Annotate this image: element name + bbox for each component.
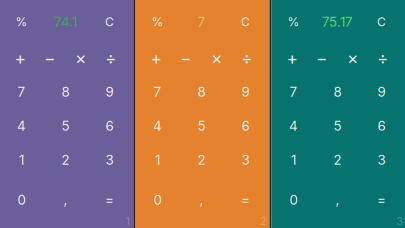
button[interactable]: C	[366, 9, 396, 35]
staticText: 0	[17, 192, 25, 208]
button[interactable]: 4	[142, 113, 172, 139]
staticText: 2	[197, 152, 205, 168]
button[interactable]: 74.1	[33, 10, 97, 34]
staticText: 9	[241, 84, 249, 100]
button[interactable]: 3	[94, 147, 124, 173]
button[interactable]: ÷	[95, 45, 125, 71]
button[interactable]: 8	[50, 79, 80, 105]
button[interactable]: C	[94, 9, 124, 35]
button[interactable]: +	[277, 45, 307, 71]
button[interactable]: 5	[322, 113, 352, 139]
button[interactable]: 8	[322, 79, 352, 105]
button[interactable]: %	[142, 9, 172, 35]
staticText: ÷	[241, 47, 252, 68]
button[interactable]: 9	[230, 79, 260, 105]
button[interactable]: =	[366, 187, 396, 213]
button[interactable]: 75.17	[305, 10, 369, 34]
staticText: 6	[241, 118, 249, 134]
button[interactable]: 0	[6, 187, 36, 213]
staticText: %	[287, 15, 299, 29]
button[interactable]: ×	[337, 45, 367, 71]
staticText: 9	[377, 84, 385, 100]
button[interactable]: ÷	[231, 45, 261, 71]
staticText: 1	[291, 152, 296, 168]
button[interactable]: 8	[186, 79, 216, 105]
button[interactable]: ×	[65, 45, 95, 71]
button[interactable]: 1	[142, 147, 172, 173]
button[interactable]: 4	[6, 113, 36, 139]
button[interactable]: ×	[201, 45, 231, 71]
staticText: 7	[17, 84, 25, 100]
button[interactable]: ,	[50, 187, 80, 213]
staticText: 1	[19, 152, 24, 168]
button[interactable]: 0	[278, 187, 308, 213]
staticText: +	[286, 47, 297, 68]
button[interactable]: 2	[322, 147, 352, 173]
button[interactable]: 6	[230, 113, 260, 139]
button[interactable]: 4	[278, 113, 308, 139]
staticText: %	[15, 15, 27, 29]
staticText: 0	[153, 192, 161, 208]
button[interactable]: %	[6, 9, 36, 35]
staticText: 4	[17, 118, 26, 134]
button[interactable]: 6	[94, 113, 124, 139]
button[interactable]: +	[141, 45, 171, 71]
button[interactable]: =	[94, 187, 124, 213]
button[interactable]: −	[306, 45, 336, 71]
staticText: 0	[289, 192, 297, 208]
staticText: =	[105, 192, 114, 208]
button[interactable]: −	[170, 45, 200, 71]
button[interactable]: −	[34, 45, 64, 71]
staticText: ,	[335, 192, 339, 208]
button[interactable]: 5	[186, 113, 216, 139]
staticText: 1	[155, 152, 160, 168]
button[interactable]: 3	[230, 147, 260, 173]
staticText: 74.1	[54, 14, 77, 30]
staticText: 4	[153, 118, 162, 134]
button[interactable]: 9	[94, 79, 124, 105]
button[interactable]: =	[230, 187, 260, 213]
staticText: 3	[377, 152, 385, 168]
staticText: 8	[197, 84, 205, 100]
staticText: 5	[61, 118, 69, 134]
staticText: 6	[377, 118, 385, 134]
button[interactable]: ÷	[367, 45, 397, 71]
staticText: 2	[260, 214, 267, 227]
button[interactable]: 5	[50, 113, 80, 139]
button[interactable]: ,	[186, 187, 216, 213]
button[interactable]: 1	[6, 147, 36, 173]
button[interactable]: 0	[142, 187, 172, 213]
staticText: ×	[211, 47, 222, 68]
staticText: 9	[105, 84, 113, 100]
button[interactable]: 3	[366, 147, 396, 173]
button[interactable]: 2	[50, 147, 80, 173]
button[interactable]: 9	[366, 79, 396, 105]
staticText: ,	[199, 192, 203, 208]
button[interactable]: 7	[169, 10, 233, 34]
staticText: 1	[125, 214, 129, 227]
button[interactable]: 1	[278, 147, 308, 173]
staticText: 2	[61, 152, 69, 168]
staticText: 7	[197, 14, 205, 30]
staticText: +	[150, 47, 161, 68]
button[interactable]: 7	[142, 79, 172, 105]
button[interactable]: 7	[6, 79, 36, 105]
staticText: −	[44, 47, 55, 68]
button[interactable]: 7	[278, 79, 308, 105]
staticText: C	[105, 15, 114, 29]
staticText: −	[180, 47, 191, 68]
staticText: 6	[105, 118, 113, 134]
button[interactable]: C	[230, 9, 260, 35]
button[interactable]: 2	[186, 147, 216, 173]
staticText: −	[316, 47, 327, 68]
button[interactable]: +	[5, 45, 35, 71]
staticText: C	[377, 15, 386, 29]
button[interactable]: %	[278, 9, 308, 35]
button[interactable]: 6	[366, 113, 396, 139]
staticText: +	[14, 47, 25, 68]
staticText: 3	[105, 152, 113, 168]
staticText: 5	[197, 118, 205, 134]
staticText: 8	[61, 84, 69, 100]
staticText: ÷	[377, 47, 388, 68]
button[interactable]: ,	[322, 187, 352, 213]
